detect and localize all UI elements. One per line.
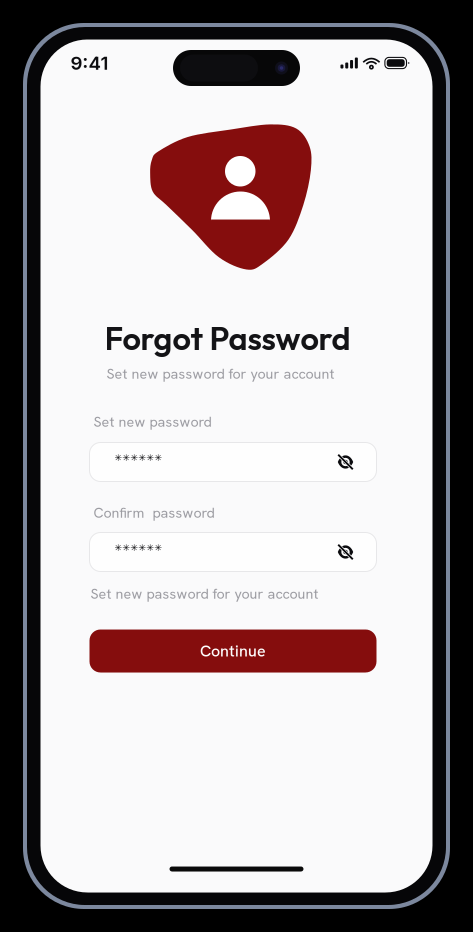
button[interactable]: Continue bbox=[89, 629, 376, 672]
staticText: ✳✳✳✳✳✳ bbox=[114, 542, 162, 553]
staticText: Confirm password bbox=[93, 503, 214, 522]
staticText: 9:41 bbox=[70, 52, 108, 74]
staticText: Continue bbox=[200, 641, 266, 661]
staticText: Set new password for your account bbox=[106, 364, 334, 383]
staticText: ✳✳✳✳✳✳ bbox=[114, 452, 162, 463]
staticText: Set new password bbox=[93, 412, 211, 431]
button[interactable]: Show new password bbox=[331, 445, 359, 478]
staticText: Set new password for your account bbox=[90, 584, 318, 603]
staticText: Forgot Password bbox=[104, 317, 350, 358]
button[interactable]: Show confirm password bbox=[331, 535, 359, 568]
